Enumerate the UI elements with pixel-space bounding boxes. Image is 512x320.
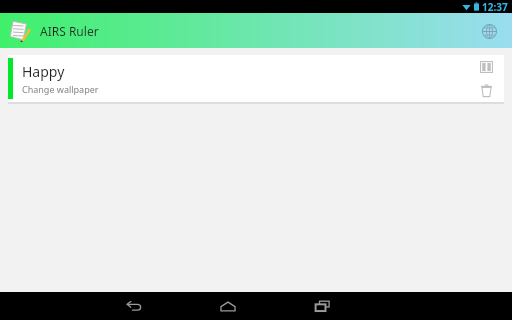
button[interactable]: Split view	[476, 57, 496, 77]
staticText: 12:37	[482, 0, 508, 13]
button[interactable]: Happy	[8, 55, 504, 102]
button[interactable]: Delete	[476, 80, 496, 100]
button[interactable]: Globe	[474, 16, 504, 46]
staticText: AIRS Ruler	[40, 23, 99, 39]
staticText: Happy	[22, 62, 65, 81]
button[interactable]: Home	[208, 292, 248, 320]
button[interactable]: Recents	[302, 292, 342, 320]
button[interactable]: Back	[114, 292, 154, 320]
staticText: Change wallpaper	[22, 83, 99, 95]
